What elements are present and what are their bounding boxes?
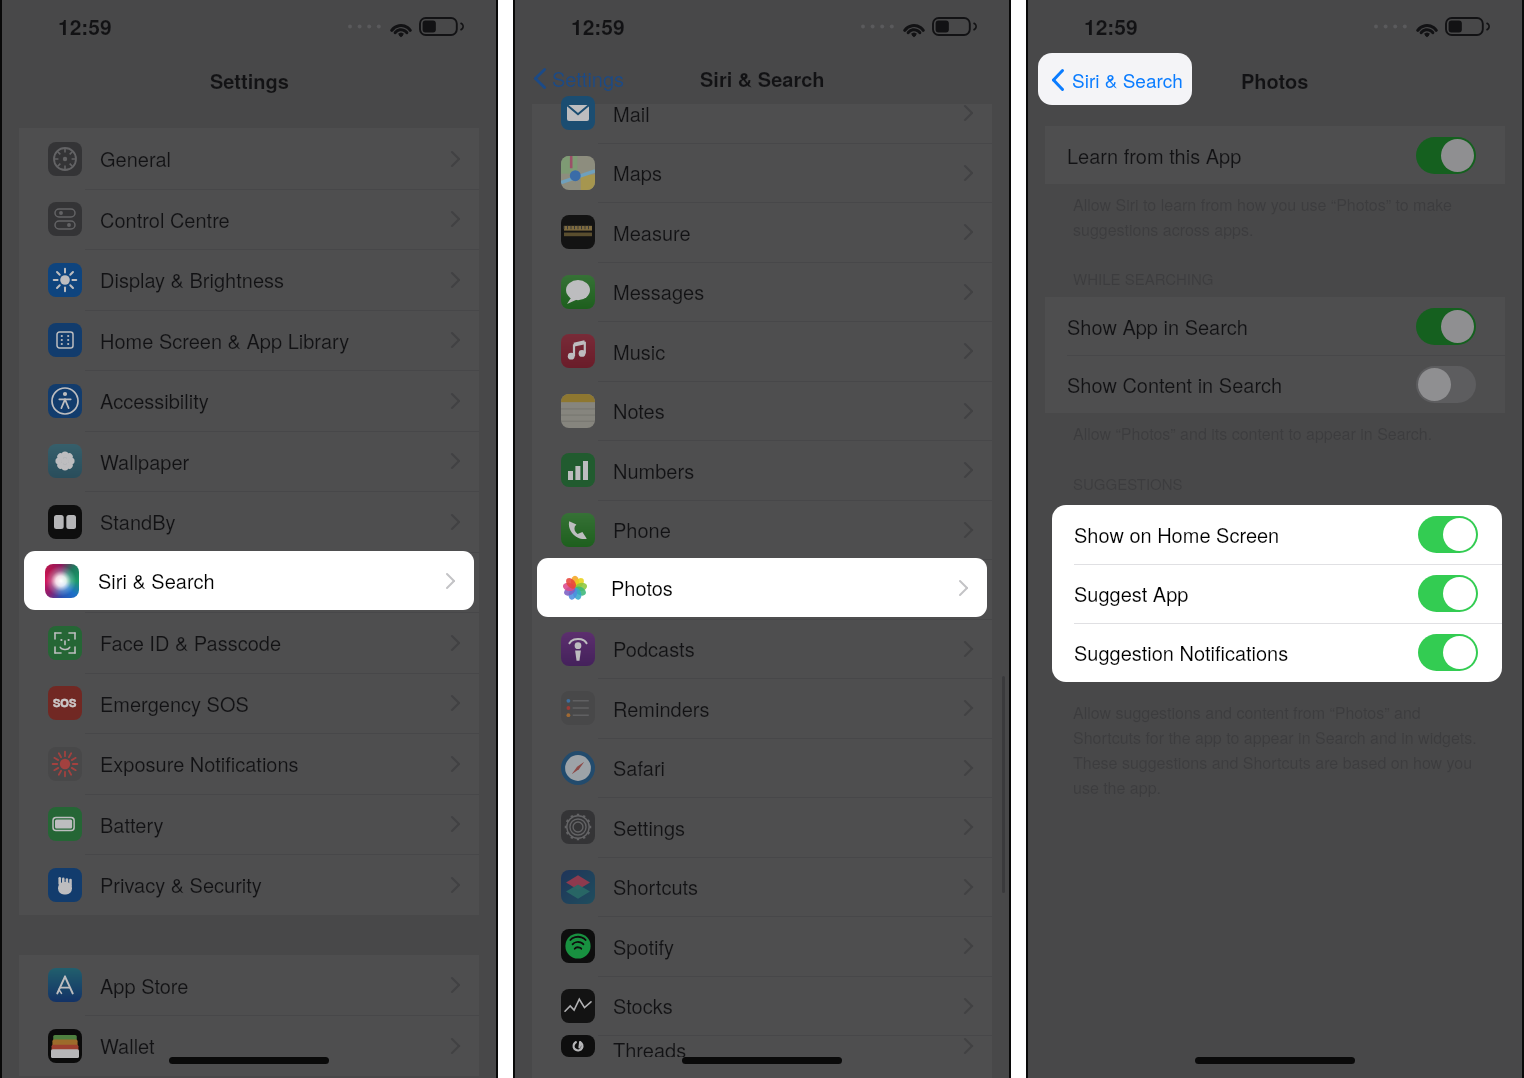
button[interactable]: Battery xyxy=(19,794,479,854)
staticText: Wallpaper xyxy=(100,447,190,476)
button[interactable]: Off xyxy=(1416,366,1476,403)
staticText: Privacy & Security xyxy=(100,870,262,899)
staticText: Siri & Search xyxy=(98,566,215,595)
button[interactable]: Settings xyxy=(532,797,992,857)
button[interactable]: Shortcuts xyxy=(532,857,992,916)
staticText: Phone xyxy=(613,515,671,544)
staticText: Maps xyxy=(613,158,662,187)
button[interactable]: Spotify xyxy=(532,916,992,976)
staticText: Music xyxy=(613,337,666,366)
staticText: Wallet xyxy=(100,1031,155,1060)
staticText: Safari xyxy=(613,753,666,782)
button[interactable]: SOS xyxy=(19,673,479,733)
button[interactable]: On xyxy=(1416,308,1476,345)
button[interactable]: Maps xyxy=(532,143,992,202)
button[interactable]: Reminders xyxy=(532,678,992,738)
button[interactable]: Podcasts xyxy=(532,619,992,678)
staticText: Mail xyxy=(613,99,650,128)
staticText: Display & Brightness xyxy=(100,265,284,294)
staticText: Accessibility xyxy=(100,386,209,415)
staticText: Battery xyxy=(100,810,164,839)
staticText: Notes xyxy=(613,396,665,425)
button[interactable]: Show on Home Screen xyxy=(1052,505,1502,564)
button[interactable]: Suggestion Notifications xyxy=(1052,623,1502,682)
staticText: Settings xyxy=(613,813,686,842)
button[interactable]: Suggest App xyxy=(1052,564,1502,623)
button[interactable]: Numbers xyxy=(532,440,992,500)
button[interactable]: Measure xyxy=(532,202,992,262)
staticText: Settings xyxy=(552,64,625,93)
button[interactable]: Siri & Search xyxy=(24,551,474,610)
staticText: Siri & Search xyxy=(700,64,825,93)
staticText: Allow “Photos” and its content to appear… xyxy=(1073,422,1433,445)
button[interactable]: General xyxy=(19,128,479,189)
staticText: Measure xyxy=(613,218,691,247)
staticText: Suggest App xyxy=(1074,579,1189,608)
staticText: Messages xyxy=(613,277,705,306)
staticText: Exposure Notifications xyxy=(100,749,299,778)
staticText: Spotify xyxy=(613,932,674,961)
staticText: General xyxy=(100,144,172,173)
button[interactable]: Display & Brightness xyxy=(19,249,479,310)
button[interactable]: Threads xyxy=(532,1035,992,1057)
staticText: Photos xyxy=(611,573,673,602)
staticText: 12:59 xyxy=(571,11,625,41)
button[interactable]: On xyxy=(1418,516,1478,553)
staticText: Face ID & Passcode xyxy=(100,628,281,657)
staticText: Show Content in Search xyxy=(1067,370,1283,399)
button[interactable]: Home Screen & App Library xyxy=(19,310,479,370)
button[interactable]: Exposure Notifications xyxy=(19,733,479,794)
button[interactable]: Photos xyxy=(532,559,992,619)
staticText: Photos xyxy=(1241,66,1309,95)
button[interactable]: Privacy & Security xyxy=(19,854,479,915)
staticText: SOS xyxy=(53,695,77,711)
button[interactable]: On xyxy=(1418,634,1478,671)
button[interactable]: Music xyxy=(532,321,992,381)
button[interactable]: Show App in Search xyxy=(1045,297,1505,355)
button[interactable]: Face ID & Passcode xyxy=(19,612,479,673)
staticText: Photos xyxy=(613,575,675,604)
button[interactable]: Photos xyxy=(537,558,987,617)
button[interactable]: Safari xyxy=(532,738,992,797)
staticText: Control Centre xyxy=(100,205,230,234)
staticText: Settings xyxy=(210,66,289,95)
button[interactable]: Wallet xyxy=(19,1015,479,1076)
staticText: Siri & Search xyxy=(100,568,217,597)
staticText: Show on Home Screen xyxy=(1074,520,1280,549)
staticText: Reminders xyxy=(613,694,710,723)
staticText: Suggestion Notifications xyxy=(1074,638,1289,667)
button[interactable]: Stocks xyxy=(532,976,992,1035)
staticText: Emergency SOS xyxy=(100,689,249,718)
staticText: 12:59 xyxy=(1084,11,1138,41)
button[interactable]: On xyxy=(1416,137,1476,174)
staticText: Podcasts xyxy=(613,634,695,663)
button[interactable]: App Store xyxy=(19,955,479,1015)
staticText: Threads xyxy=(613,1035,687,1057)
staticText: Learn from this App xyxy=(1067,141,1242,170)
button[interactable]: Messages xyxy=(532,262,992,321)
button[interactable]: Accessibility xyxy=(19,370,479,431)
staticText: App Store xyxy=(100,971,189,1000)
staticText: StandBy xyxy=(100,507,176,536)
button[interactable]: Show Content in Search xyxy=(1045,355,1505,413)
button[interactable]: StandBy xyxy=(19,491,479,552)
staticText: Stocks xyxy=(613,991,673,1020)
button[interactable]: Phone xyxy=(532,500,992,559)
staticText: WHILE SEARCHING xyxy=(1073,268,1214,289)
button[interactable]: On xyxy=(1418,575,1478,612)
button[interactable]: Settings xyxy=(515,52,635,104)
staticText: Shortcuts xyxy=(613,872,699,901)
button[interactable]: Siri & Search xyxy=(1038,53,1192,105)
button[interactable]: Mail xyxy=(532,83,992,143)
button[interactable]: Notes xyxy=(532,381,992,440)
staticText: 12:59 xyxy=(58,11,112,41)
button[interactable]: Control Centre xyxy=(19,189,479,249)
button[interactable]: Siri & Search xyxy=(19,552,479,612)
staticText: Home Screen & App Library xyxy=(100,326,350,355)
staticText: SUGGESTIONS xyxy=(1073,473,1183,494)
staticText: Show App in Search xyxy=(1067,312,1248,341)
button[interactable]: Wallpaper xyxy=(19,431,479,491)
button[interactable]: Learn from this App xyxy=(1045,126,1505,184)
